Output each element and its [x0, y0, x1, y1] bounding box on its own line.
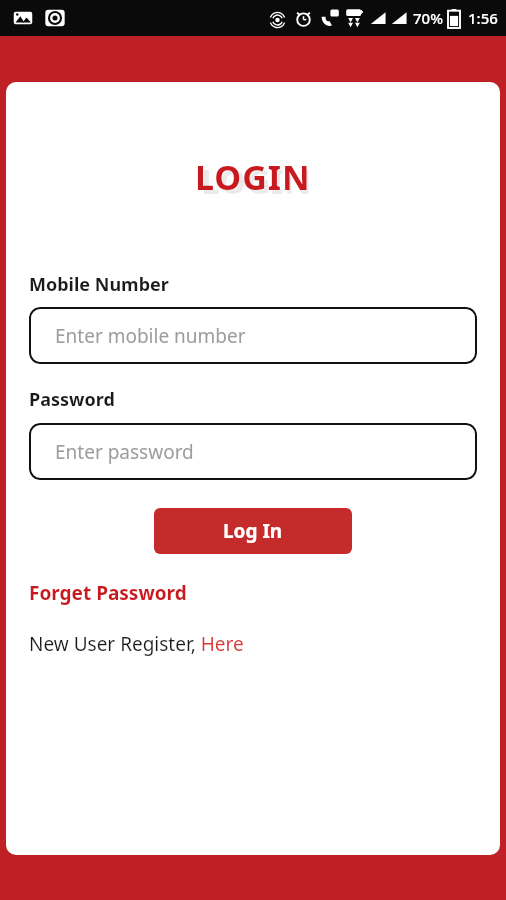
button[interactable]: Enter password — [29, 423, 477, 480]
button[interactable]: Log In — [154, 508, 352, 554]
staticText: Enter password — [55, 439, 194, 465]
button[interactable]: Forget Password — [29, 580, 187, 606]
button[interactable]: New User Register, Here — [29, 631, 244, 657]
staticText: Password — [29, 387, 115, 412]
staticText: LOGIN — [195, 154, 311, 200]
staticText: Mobile Number — [29, 272, 169, 297]
staticText: LOGIN — [201, 158, 312, 204]
staticText: Forget Password — [29, 580, 187, 606]
staticText: Log In — [223, 518, 283, 544]
staticText: 70% — [413, 8, 443, 28]
staticText: Enter mobile number — [55, 323, 246, 349]
staticText: 1:56 — [468, 8, 498, 28]
button[interactable]: Enter mobile number — [29, 307, 477, 364]
staticText: New User Register, Here — [29, 631, 244, 657]
